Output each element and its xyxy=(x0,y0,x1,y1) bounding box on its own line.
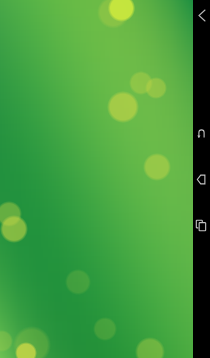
button[interactable]: Collapse xyxy=(193,0,210,30)
button[interactable]: Home xyxy=(193,156,210,202)
button[interactable]: Back xyxy=(193,110,210,156)
button[interactable]: Recent apps xyxy=(193,202,210,248)
